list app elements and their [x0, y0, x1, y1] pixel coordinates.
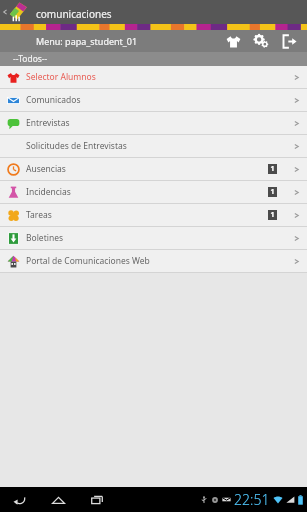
button[interactable]: Solicitudes de Entrevistas	[0, 135, 307, 157]
button[interactable]: Ajustes	[247, 30, 275, 52]
button[interactable]: Inicio	[47, 489, 69, 511]
button[interactable]: Uniforme	[219, 30, 247, 52]
button[interactable]: Recientes	[86, 489, 108, 511]
staticText: Ausencias	[26, 163, 268, 175]
button[interactable]: Comunicados	[0, 89, 307, 111]
staticText: Tareas	[26, 209, 268, 221]
staticText: 1	[270, 164, 275, 174]
staticText: Comunicados	[26, 94, 285, 106]
staticText: comunicaciones	[36, 7, 112, 21]
staticText: Boletines	[26, 232, 285, 244]
staticText: 1	[270, 187, 275, 197]
staticText: Portal de Comunicaciones Web	[26, 255, 285, 267]
staticText: Selector Alumnos	[26, 71, 285, 83]
button[interactable]: Portal de Comunicaciones Web	[0, 250, 307, 272]
staticText: 22:51	[234, 490, 270, 509]
staticText: 1	[270, 210, 275, 220]
staticText: Menu: papa_student_01	[36, 35, 138, 47]
staticText: Entrevistas	[26, 117, 285, 129]
staticText: Solicitudes de Entrevistas	[26, 140, 285, 152]
button[interactable]: Salir	[275, 30, 303, 52]
staticText: --Todos--	[13, 53, 48, 65]
button[interactable]: Boletines	[0, 227, 307, 249]
staticText: Incidencias	[26, 186, 268, 198]
button[interactable]: Tareas	[0, 204, 307, 226]
button[interactable]: Incidencias	[0, 181, 307, 203]
button[interactable]: Entrevistas	[0, 112, 307, 134]
button[interactable]: Atrás	[8, 489, 30, 511]
button[interactable]: Selector Alumnos	[0, 66, 307, 88]
button[interactable]: Ausencias	[0, 158, 307, 180]
